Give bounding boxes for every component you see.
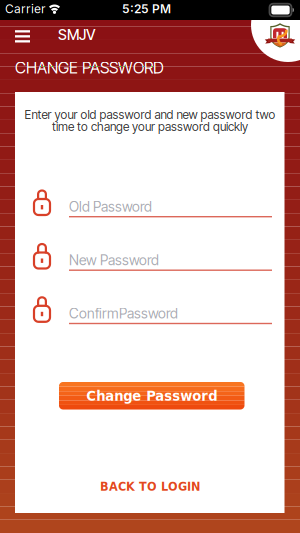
staticText: BACK TO LOGIN xyxy=(100,479,200,494)
staticText: Enter your old password and new password… xyxy=(24,107,275,122)
staticText: Carrier xyxy=(5,1,46,16)
staticText: CHANGE PASSWORD xyxy=(15,58,164,77)
staticText: Old Password xyxy=(69,198,152,215)
button[interactable]: Change Password xyxy=(59,382,244,409)
button[interactable]: BACK TO LOGIN xyxy=(15,479,285,494)
button[interactable]: ConfirmPassword xyxy=(69,305,272,324)
staticText: ConfirmPassword xyxy=(69,305,178,322)
button[interactable]: New Password xyxy=(69,252,272,271)
staticText: SMJV xyxy=(58,26,96,44)
staticText: Change Password xyxy=(86,387,217,404)
staticText: New Password xyxy=(69,252,159,269)
staticText: time to change your password quickly xyxy=(52,119,248,134)
button[interactable]: Menu xyxy=(0,0,45,53)
staticText: 5:25 PM xyxy=(122,1,171,16)
button[interactable]: Old Password xyxy=(69,198,272,217)
